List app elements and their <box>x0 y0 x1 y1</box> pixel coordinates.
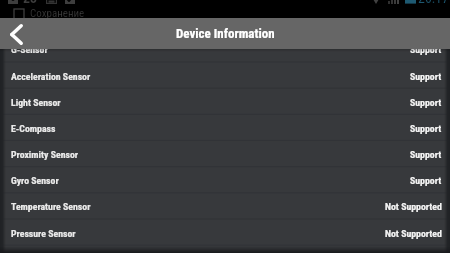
staticText: Support <box>410 149 442 160</box>
staticText: Temperature Sensor <box>11 201 91 212</box>
button[interactable]: Proximity Sensor <box>0 141 450 167</box>
staticText: Support <box>410 97 442 108</box>
staticText: 23 <box>23 0 38 6</box>
staticText: Gyro Sensor <box>11 175 59 186</box>
staticText: E-Compass <box>11 123 56 134</box>
button[interactable]: Gyro Sensor <box>0 167 450 193</box>
staticText: Support <box>410 44 442 55</box>
staticText: G-Sensor <box>11 44 48 55</box>
staticText: 20:17 <box>418 0 449 6</box>
staticText: Support <box>410 175 442 186</box>
button[interactable]: Pressure Sensor <box>0 220 450 246</box>
staticText: Pressure Sensor <box>11 228 76 239</box>
button[interactable]: Back <box>0 18 32 49</box>
staticText: Light Sensor <box>11 97 61 108</box>
staticText: Сохранение <box>30 7 85 18</box>
button[interactable]: Temperature Sensor <box>0 193 450 219</box>
button[interactable]: E-Compass <box>0 115 450 141</box>
button[interactable]: G-Sensor <box>0 36 450 62</box>
staticText: Not Supported <box>385 228 442 239</box>
staticText: Proximity Sensor <box>11 149 79 160</box>
button[interactable]: Acceleration Sensor <box>0 63 450 89</box>
staticText: Support <box>410 123 442 134</box>
staticText: Device Information <box>176 26 275 41</box>
staticText: Support <box>410 71 442 82</box>
button[interactable]: Light Sensor <box>0 89 450 115</box>
staticText: Not Supported <box>385 201 442 212</box>
staticText: Acceleration Sensor <box>11 71 91 82</box>
